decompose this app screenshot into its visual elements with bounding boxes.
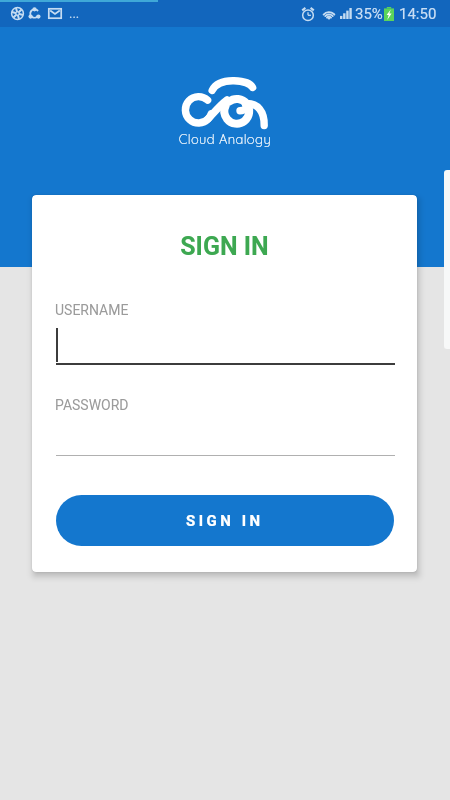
other: Signal [340, 8, 352, 19]
other: Mail [48, 8, 62, 19]
other: Camera [11, 7, 24, 20]
staticText: ... [69, 6, 80, 21]
other: Wi-Fi [322, 8, 336, 20]
staticText: SIGN IN [32, 232, 417, 261]
staticText: USERNAME [55, 302, 129, 318]
staticText: 35% [355, 5, 383, 23]
staticText: SIGN IN [186, 512, 264, 530]
other: Battery [384, 7, 394, 21]
staticText: 14:50 [399, 5, 437, 23]
staticText: PASSWORD [55, 397, 129, 413]
button[interactable]: SIGN IN [56, 495, 394, 546]
staticText: Cloud Analogy [0, 131, 450, 147]
other: Alarm [301, 7, 315, 21]
other: Share [28, 7, 41, 20]
